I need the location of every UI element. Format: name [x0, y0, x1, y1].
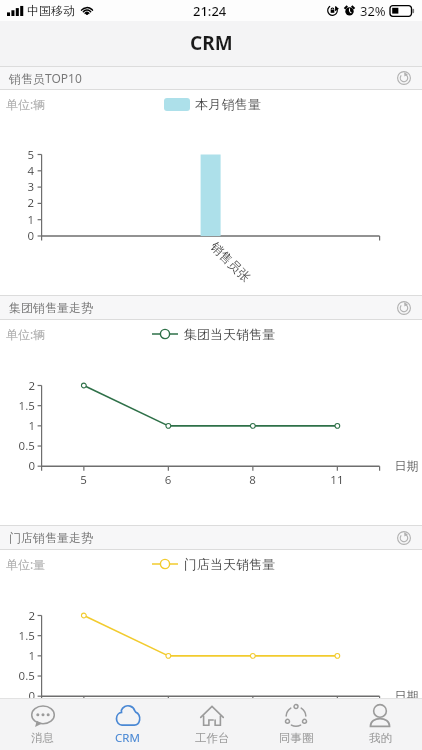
- staticText: 门店销售量走势: [9, 530, 93, 545]
- staticText: 单位:辆: [6, 96, 46, 112]
- button[interactable]: 集团销售量走势: [0, 296, 422, 319]
- other: 刷新: [397, 301, 411, 315]
- other: 旋转锁定: [327, 5, 338, 16]
- button[interactable]: 门店销售量走势: [0, 526, 422, 549]
- staticText: 消息: [31, 731, 54, 745]
- button[interactable]: 销售员TOP10: [0, 67, 422, 89]
- staticText: 集团当天销售量: [184, 326, 275, 342]
- staticText: 集团销售量走势: [9, 300, 93, 315]
- staticText: 中国移动: [27, 3, 75, 18]
- button[interactable]: 工作台: [170, 699, 254, 750]
- staticText: 21:24: [193, 2, 227, 20]
- staticText: 32%: [360, 2, 386, 20]
- staticText: 门店当天销售量: [184, 556, 275, 572]
- staticText: 销售员TOP10: [9, 70, 82, 86]
- staticText: 工作台: [195, 731, 230, 745]
- staticText: CRM: [115, 730, 140, 746]
- staticText: 同事圈: [279, 731, 314, 745]
- button[interactable]: CRM: [85, 699, 170, 750]
- button[interactable]: 我的: [338, 699, 422, 750]
- other: 刷新: [397, 531, 411, 545]
- other: 刷新: [397, 71, 411, 85]
- staticText: CRM: [190, 30, 233, 56]
- button[interactable]: 消息: [0, 699, 85, 750]
- staticText: 本月销售量: [195, 96, 261, 113]
- staticText: 我的: [369, 731, 392, 745]
- button[interactable]: 同事圈: [254, 699, 338, 750]
- staticText: 单位:量: [6, 556, 46, 572]
- other: 闹钟: [344, 5, 355, 16]
- staticText: 单位:辆: [6, 326, 46, 342]
